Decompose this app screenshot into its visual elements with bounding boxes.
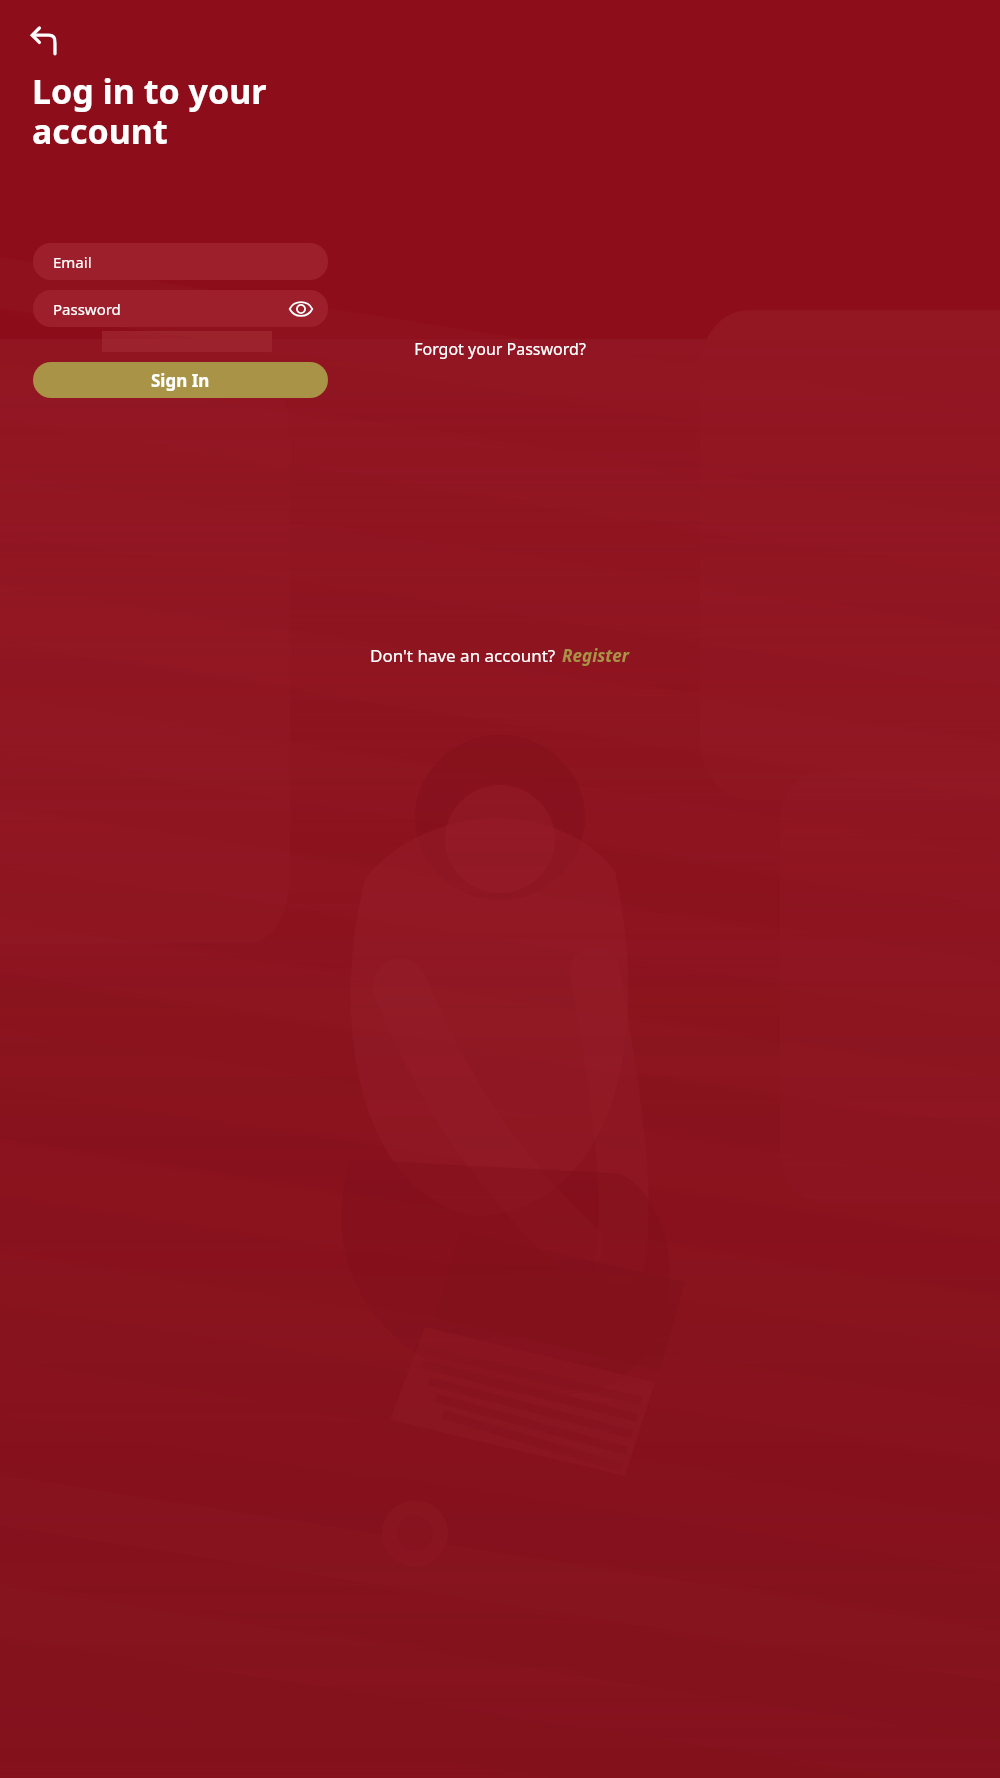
button[interactable]: Show password [284, 292, 318, 326]
staticText: Email [53, 252, 92, 272]
staticText: Register [562, 644, 629, 667]
button[interactable]: Forgot your Password? [402, 332, 598, 366]
staticText: Forgot your Password? [414, 338, 586, 360]
button[interactable]: Back [22, 16, 70, 64]
staticText: Password [53, 299, 121, 319]
button[interactable]: Email [33, 243, 328, 280]
button[interactable]: Register [560, 640, 631, 671]
button[interactable]: Password [33, 290, 328, 327]
staticText: Sign In [151, 369, 210, 392]
button[interactable]: Sign In [33, 362, 328, 398]
staticText: Don't have an account? [370, 644, 560, 667]
staticText: Log in to your account [32, 68, 282, 154]
